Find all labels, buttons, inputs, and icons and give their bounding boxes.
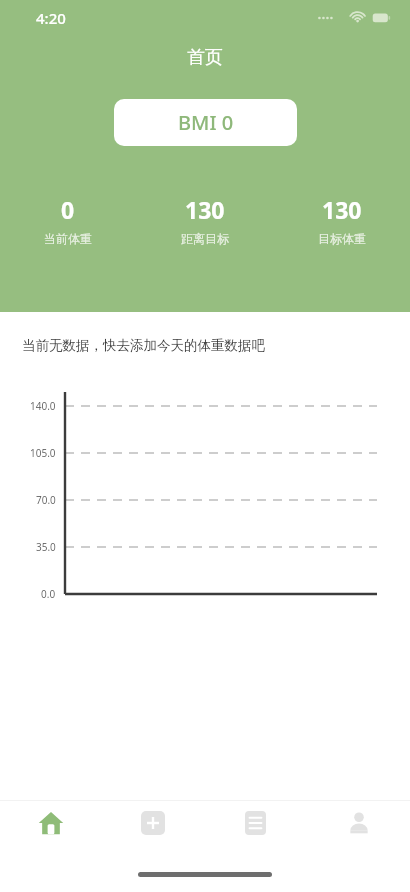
staticText: 当前无数据，快去添加今天的体重数据吧	[22, 337, 265, 354]
staticText: 当前体重	[44, 231, 92, 246]
button[interactable]: Add record	[102, 801, 204, 861]
button[interactable]: Records	[204, 801, 307, 861]
staticText: 35.0	[36, 540, 56, 554]
button[interactable]: 130	[273, 194, 410, 246]
staticText: 目标体重	[318, 231, 366, 246]
button[interactable]: 130	[136, 194, 273, 246]
button[interactable]: 0	[0, 194, 136, 246]
staticText: 0.0	[41, 587, 56, 601]
button[interactable]: Home	[0, 801, 102, 861]
staticText: 4:20	[36, 8, 66, 28]
staticText: 130	[322, 194, 362, 225]
staticText: 130	[185, 194, 225, 225]
staticText: 首页	[0, 46, 410, 69]
button[interactable]: Profile	[307, 801, 410, 861]
staticText: 70.0	[36, 493, 56, 507]
staticText: 140.0	[30, 399, 56, 413]
button[interactable]: BMI 0	[114, 99, 297, 146]
staticText: 距离目标	[181, 231, 229, 246]
staticText: 0	[61, 194, 75, 225]
staticText: 105.0	[30, 446, 56, 460]
staticText: BMI 0	[178, 109, 234, 136]
